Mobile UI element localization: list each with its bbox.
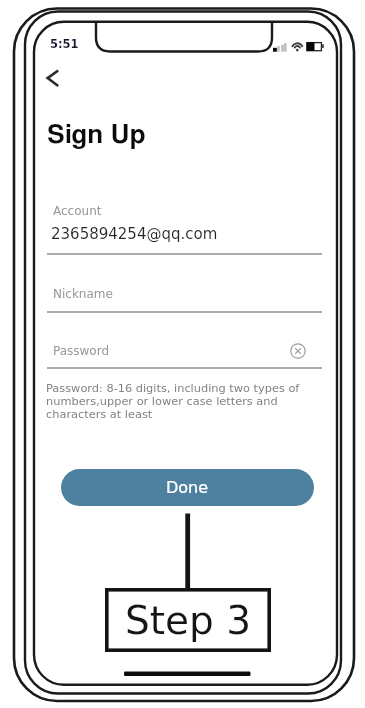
button[interactable]: Clear password [287, 340, 309, 362]
staticText: Sign Up [47, 122, 146, 148]
button[interactable]: Done [61, 469, 314, 506]
staticText: 2365894254@qq.com [51, 225, 218, 242]
staticText: Password: 8-16 digits, including two typ… [46, 381, 326, 420]
staticText: Nickname [53, 287, 113, 301]
staticText: 5:51 [50, 37, 79, 50]
staticText: Account [53, 204, 102, 218]
button[interactable]: Back [41, 66, 67, 92]
staticText: Step 3 [125, 598, 252, 643]
staticText: Password [53, 344, 110, 358]
staticText: Done [166, 478, 209, 497]
